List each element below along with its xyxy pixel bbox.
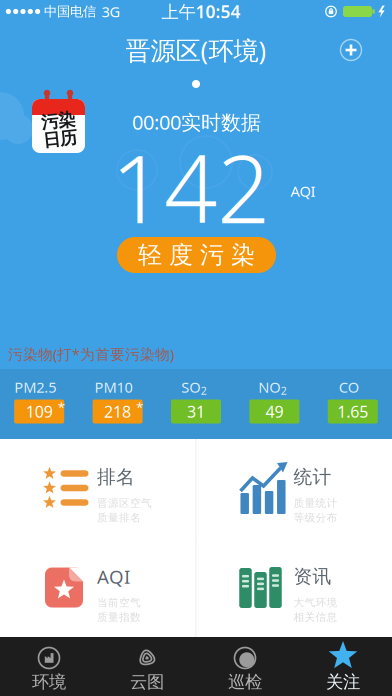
staticText: * [136, 398, 143, 416]
staticText: NO [258, 377, 280, 397]
button[interactable]: 环境 [0, 637, 98, 696]
staticText: 中国电信 [44, 3, 96, 20]
staticText: CO [339, 377, 359, 397]
button[interactable]: 关注 [294, 637, 392, 696]
button[interactable]: 轻 度 污 染 [117, 237, 276, 273]
staticText: 晋源区(环境) [125, 33, 266, 67]
staticText: 晋源区空气 [97, 497, 152, 510]
staticText: 日历 [42, 128, 76, 150]
button[interactable]: AQI [0, 539, 195, 638]
button[interactable]: 添加 [335, 34, 367, 66]
staticText: AQI [290, 181, 315, 201]
staticText: 109 [26, 401, 53, 422]
staticText: 3G [101, 2, 120, 21]
staticText: * [58, 398, 65, 416]
button[interactable]: 巡检 [196, 637, 294, 696]
staticText: 环境 [32, 671, 66, 693]
staticText: AQI [97, 564, 130, 589]
staticText: 2 [281, 384, 287, 398]
staticText: 00:00实时数据 [132, 109, 261, 135]
button[interactable]: 排名 [0, 440, 195, 539]
staticText: 质量统计 [293, 497, 337, 510]
button[interactable]: 云图 [98, 637, 196, 696]
staticText: 关注 [326, 671, 360, 693]
staticText: 31 [187, 401, 205, 422]
staticText: 2 [201, 384, 207, 398]
staticText: 142 [111, 125, 270, 249]
staticText: SO [181, 377, 200, 397]
button[interactable]: 资讯 [196, 539, 392, 638]
staticText: 污染物(打*为首要污染物) [8, 344, 174, 364]
staticText: 1.65 [337, 401, 368, 422]
staticText: 排名 [97, 465, 135, 488]
staticText: 等级分布 [293, 511, 337, 524]
staticText: 49 [265, 401, 283, 422]
staticText: 污染 [42, 110, 76, 131]
staticText: 资讯 [293, 565, 331, 588]
staticText: 上午10:54 [161, 0, 240, 23]
staticText: 云图 [130, 671, 164, 693]
staticText: 巡检 [228, 671, 262, 693]
staticText: 218 [104, 401, 131, 422]
staticText: 统计 [293, 465, 331, 488]
staticText: 大气环境 [293, 596, 337, 609]
button[interactable]: 污染日历 [7, 89, 97, 153]
staticText: 轻 度 污 染 [138, 240, 255, 270]
staticText: 当前空气 [97, 596, 141, 609]
staticText: 质量指数 [97, 611, 141, 624]
staticText: 相关信息 [293, 611, 337, 624]
staticText: PM10 [95, 377, 133, 397]
staticText: PM2.5 [14, 377, 56, 397]
staticText: 质量排名 [97, 511, 141, 524]
button[interactable]: 统计 [196, 440, 392, 539]
